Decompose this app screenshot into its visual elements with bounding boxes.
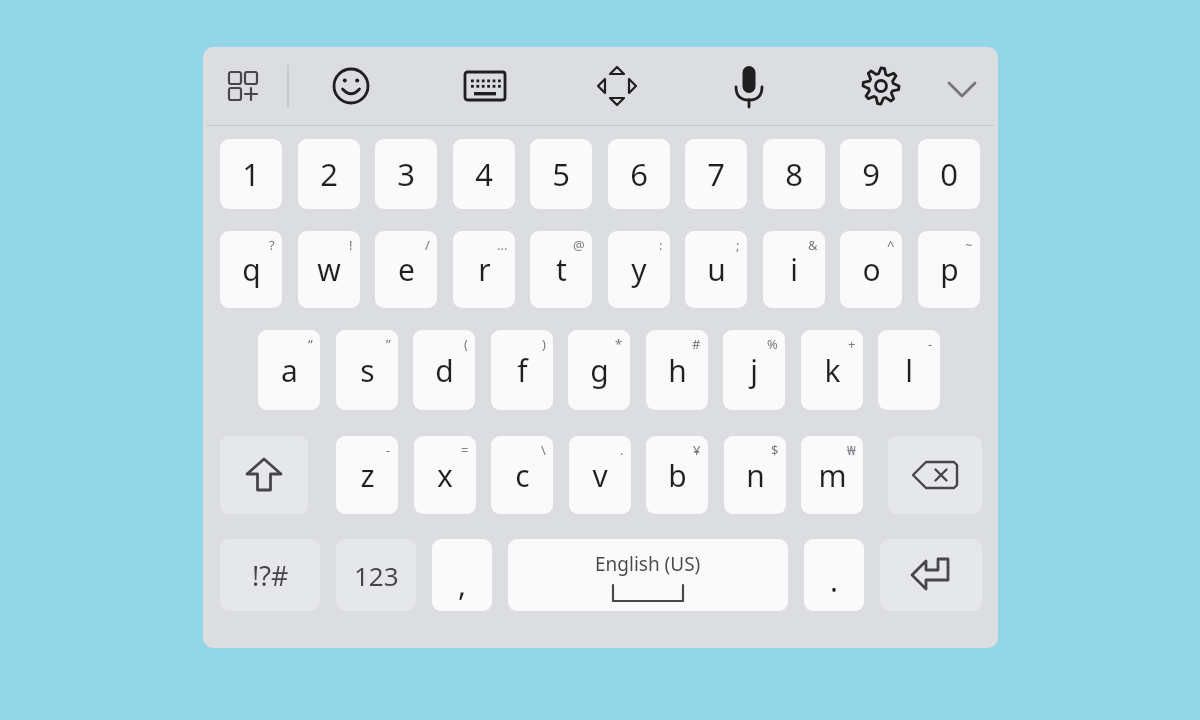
staticText: a <box>281 350 298 391</box>
button[interactable]: c <box>491 436 553 514</box>
staticText: % <box>767 335 778 353</box>
button[interactable]: 4 <box>453 139 515 209</box>
staticText: q <box>242 249 261 290</box>
button[interactable]: r <box>453 231 515 308</box>
button[interactable]: v <box>569 436 631 514</box>
button[interactable]: i <box>763 231 825 308</box>
staticText: l <box>905 350 913 391</box>
staticText: k <box>824 350 841 391</box>
staticText: . <box>620 441 624 459</box>
staticText: j <box>750 350 758 391</box>
button[interactable]: e <box>375 231 437 308</box>
staticText: e <box>398 249 415 290</box>
button[interactable]: x <box>414 436 476 514</box>
button[interactable]: Enter <box>880 539 982 611</box>
button[interactable]: 123 <box>336 539 416 611</box>
button[interactable]: 9 <box>840 139 902 209</box>
button[interactable]: g <box>568 330 630 410</box>
button[interactable]: j <box>723 330 785 410</box>
button[interactable]: Emoji <box>324 59 378 113</box>
staticText: ... <box>497 236 508 254</box>
staticText: z <box>360 455 375 496</box>
staticText: $ <box>771 441 779 459</box>
button[interactable]: Shift <box>220 436 308 514</box>
button[interactable]: p <box>918 231 980 308</box>
button[interactable]: 8 <box>763 139 825 209</box>
staticText: f <box>517 350 528 391</box>
button[interactable]: 0 <box>918 139 980 209</box>
button[interactable]: t <box>530 231 592 308</box>
staticText: 3 <box>397 153 415 195</box>
staticText: ( <box>464 335 468 353</box>
staticText: c <box>515 455 530 496</box>
button[interactable]: k <box>801 330 863 410</box>
button[interactable]: o <box>840 231 902 308</box>
button[interactable]: Settings <box>854 59 908 113</box>
button[interactable]: Backspace <box>888 436 982 514</box>
staticText: d <box>435 350 454 391</box>
button[interactable]: 6 <box>608 139 670 209</box>
staticText: h <box>668 350 687 391</box>
button[interactable]: , <box>432 539 492 611</box>
button[interactable]: 3 <box>375 139 437 209</box>
button[interactable]: 2 <box>298 139 360 209</box>
staticText: v <box>592 455 608 496</box>
button[interactable]: s <box>336 330 398 410</box>
staticText: 0 <box>940 153 958 195</box>
button[interactable]: d <box>413 330 475 410</box>
button[interactable]: q <box>220 231 282 308</box>
staticText: r <box>478 249 491 290</box>
staticText: w <box>317 249 341 290</box>
staticText: s <box>360 350 375 391</box>
staticText: 4 <box>475 153 493 195</box>
staticText: . <box>830 560 839 601</box>
button[interactable]: m <box>801 436 863 514</box>
staticText: ¥ <box>693 441 701 459</box>
staticText: = <box>461 441 469 459</box>
button[interactable]: Keyboard layout <box>458 59 512 113</box>
staticText: i <box>790 249 798 290</box>
staticText: p <box>940 249 959 290</box>
staticText: ) <box>542 335 546 353</box>
staticText: ^ <box>887 236 895 254</box>
button[interactable]: . <box>804 539 864 611</box>
staticText: 2 <box>320 153 338 195</box>
button[interactable]: Cursor control <box>590 59 644 113</box>
staticText: - <box>928 335 933 353</box>
staticText: 8 <box>785 153 803 195</box>
button[interactable]: Toolbar apps <box>216 59 270 113</box>
staticText: * <box>615 335 623 353</box>
button[interactable]: 5 <box>530 139 592 209</box>
staticText: English (US) <box>595 551 701 577</box>
staticText: 6 <box>630 153 648 195</box>
staticText: ~ <box>965 236 973 254</box>
button[interactable]: h <box>646 330 708 410</box>
button[interactable]: !?# <box>220 539 320 611</box>
staticText: t <box>556 249 567 290</box>
staticText: @ <box>573 236 585 254</box>
staticText: 5 <box>552 153 570 195</box>
button[interactable]: n <box>724 436 786 514</box>
button[interactable]: z <box>336 436 398 514</box>
button[interactable]: Hide keyboard <box>935 61 989 115</box>
staticText: ! <box>349 236 353 254</box>
staticText: ; <box>736 236 740 254</box>
staticText: ₩ <box>847 441 856 459</box>
button[interactable]: u <box>685 231 747 308</box>
button[interactable]: b <box>646 436 708 514</box>
button[interactable]: f <box>491 330 553 410</box>
button[interactable]: Voice input <box>722 59 776 113</box>
staticText: g <box>590 350 609 391</box>
staticText: y <box>631 249 647 290</box>
button[interactable]: y <box>608 231 670 308</box>
staticText: ? <box>269 236 275 254</box>
staticText: 123 <box>354 558 399 593</box>
button[interactable]: Space <box>508 539 788 611</box>
button[interactable]: l <box>878 330 940 410</box>
button[interactable]: a <box>258 330 320 410</box>
staticText: ” <box>386 335 391 353</box>
button[interactable]: w <box>298 231 360 308</box>
button[interactable]: 1 <box>220 139 282 209</box>
staticText: 9 <box>862 153 880 195</box>
button[interactable]: 7 <box>685 139 747 209</box>
